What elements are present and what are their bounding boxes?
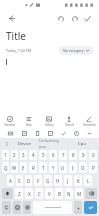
button[interactable]: Enter bbox=[84, 201, 97, 214]
button[interactable]: V bbox=[45, 188, 53, 199]
button[interactable]: Cpu bbox=[68, 141, 96, 147]
staticText: P bbox=[92, 165, 95, 171]
button[interactable]: I bbox=[69, 162, 77, 173]
staticText: Cpu bbox=[78, 141, 86, 147]
button[interactable]: Symbols bbox=[2, 201, 11, 214]
button[interactable]: J bbox=[64, 175, 72, 186]
button[interactable]: Space bbox=[33, 201, 72, 214]
button[interactable]: Back bbox=[5, 12, 17, 24]
button[interactable]: E bbox=[20, 162, 27, 173]
button[interactable]: Redo bbox=[68, 12, 81, 25]
button[interactable]: K bbox=[74, 175, 82, 186]
button[interactable]: C bbox=[35, 188, 43, 199]
button[interactable]: Format 6 bbox=[83, 128, 96, 138]
staticText: M bbox=[77, 191, 82, 197]
button[interactable]: Z bbox=[15, 188, 23, 199]
button[interactable]: P bbox=[89, 162, 97, 173]
button[interactable]: 4 bbox=[29, 150, 37, 160]
staticText: No category bbox=[63, 48, 84, 53]
button[interactable]: Device bbox=[10, 141, 38, 147]
staticText: 5 bbox=[42, 152, 45, 158]
button[interactable]: Checklist bbox=[0, 114, 19, 128]
button[interactable]: Y bbox=[49, 162, 57, 173]
button[interactable]: 2 bbox=[11, 150, 18, 160]
staticText: V bbox=[48, 191, 51, 197]
button[interactable]: Handwrite bbox=[79, 114, 99, 128]
button[interactable]: N bbox=[65, 188, 73, 199]
button[interactable]: Format 3 bbox=[44, 128, 57, 138]
button[interactable]: Format 0 bbox=[3, 128, 17, 138]
staticText: Q bbox=[4, 165, 8, 171]
button[interactable]: 1 bbox=[2, 150, 9, 160]
button[interactable]: Emoji bbox=[13, 201, 21, 214]
button[interactable]: More bbox=[3, 140, 10, 147]
staticText: 8 bbox=[72, 152, 75, 158]
button[interactable]: A bbox=[7, 175, 14, 186]
button[interactable]: Format 5 bbox=[70, 128, 83, 138]
button[interactable]: Q bbox=[2, 162, 9, 173]
staticText: 2 bbox=[13, 152, 16, 158]
button[interactable]: 8 bbox=[69, 150, 77, 160]
staticText: 3 bbox=[22, 152, 25, 158]
staticText: E bbox=[22, 165, 25, 171]
button[interactable]: 3 bbox=[20, 150, 27, 160]
button[interactable]: Settings bbox=[23, 201, 31, 214]
button[interactable]: Gallery bbox=[39, 114, 59, 128]
staticText: U bbox=[61, 165, 65, 171]
staticText: Title bbox=[6, 29, 26, 43]
button[interactable]: R bbox=[29, 162, 37, 173]
button[interactable]: D bbox=[25, 175, 32, 186]
button[interactable]: F bbox=[34, 175, 42, 186]
button[interactable]: O bbox=[79, 162, 87, 173]
button[interactable]: Format 2 bbox=[31, 128, 44, 138]
button[interactable]: 9 bbox=[79, 150, 87, 160]
button[interactable]: G bbox=[44, 175, 52, 186]
staticText: Record bbox=[65, 123, 74, 127]
button[interactable]: No category bbox=[59, 46, 93, 55]
staticText: L bbox=[87, 178, 90, 184]
button[interactable]: Shift bbox=[2, 188, 13, 199]
button[interactable]: W bbox=[11, 162, 18, 173]
button[interactable]: M bbox=[75, 188, 83, 199]
button[interactable]: Unlocking you bbox=[39, 138, 67, 149]
staticText: B bbox=[58, 191, 61, 197]
button[interactable]: U bbox=[59, 162, 67, 173]
staticText: W bbox=[12, 165, 17, 171]
button[interactable]: T bbox=[39, 162, 47, 173]
staticText: Y bbox=[52, 165, 55, 171]
staticText: D bbox=[27, 178, 31, 184]
button[interactable]: Format 1 bbox=[17, 128, 31, 138]
staticText: 7 bbox=[62, 152, 65, 158]
button[interactable]: 0 bbox=[89, 150, 97, 160]
button[interactable]: L bbox=[84, 175, 92, 186]
staticText: T bbox=[42, 165, 45, 171]
button[interactable]: Period bbox=[74, 201, 82, 214]
staticText: 9 bbox=[82, 152, 85, 158]
button[interactable]: Record bbox=[59, 114, 79, 128]
button[interactable]: Note bbox=[19, 114, 39, 128]
staticText: 0 bbox=[92, 152, 95, 158]
staticText: F bbox=[37, 178, 40, 184]
staticText: K bbox=[77, 178, 80, 184]
button[interactable]: X bbox=[25, 188, 33, 199]
staticText: 6 bbox=[52, 152, 55, 158]
button[interactable]: 5 bbox=[39, 150, 47, 160]
button[interactable]: S bbox=[16, 175, 23, 186]
staticText: X bbox=[28, 191, 31, 197]
button[interactable]: Backspace bbox=[85, 188, 97, 199]
staticText: 4 bbox=[32, 152, 35, 158]
staticText: I bbox=[72, 165, 74, 171]
staticText: N bbox=[67, 191, 71, 197]
button[interactable]: B bbox=[55, 188, 63, 199]
button[interactable]: H bbox=[54, 175, 62, 186]
staticText: A bbox=[9, 178, 12, 184]
staticText: Gallery bbox=[45, 123, 54, 127]
button[interactable]: 6 bbox=[49, 150, 57, 160]
button[interactable]: Format 4 bbox=[57, 128, 70, 138]
button[interactable]: Save bbox=[81, 12, 94, 25]
staticText: Handwrite bbox=[83, 123, 96, 127]
button[interactable]: Undo bbox=[55, 12, 68, 25]
staticText: Unlocking you bbox=[39, 138, 67, 149]
button[interactable]: 7 bbox=[59, 150, 67, 160]
staticText: Today, 7:24 PM bbox=[6, 48, 32, 53]
